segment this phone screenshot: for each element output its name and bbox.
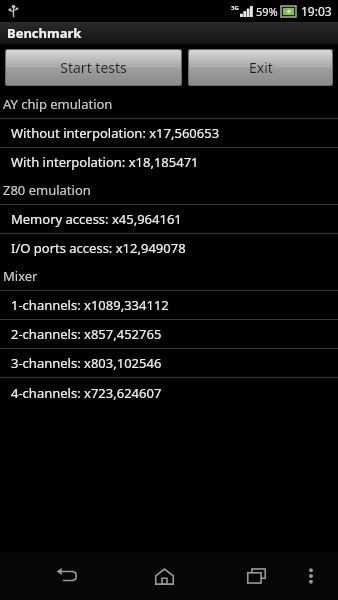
button[interactable]: 1-channels: x1089,334112 (0, 291, 338, 319)
button[interactable]: Recent apps (232, 552, 280, 600)
button[interactable]: 2-channels: x857,452765 (0, 320, 338, 348)
button[interactable]: Exit (189, 50, 332, 85)
staticText: AY chip emulation (3, 95, 113, 113)
staticText: I/O ports access: x12,949078 (11, 239, 186, 257)
staticText: 4-channels: x723,624607 (11, 384, 162, 402)
button[interactable]: Without interpolation: x17,560653 (0, 119, 338, 147)
staticText: 59% (256, 4, 278, 19)
button[interactable]: I/O ports access: x12,949078 (0, 234, 338, 262)
button[interactable]: Start tests (6, 50, 181, 85)
staticText: Exit (249, 58, 273, 77)
button[interactable]: 3-channels: x803,102546 (0, 349, 338, 377)
button[interactable]: More options (292, 557, 330, 595)
staticText: Mixer (3, 267, 38, 285)
button[interactable]: With interpolation: x18,185471 (0, 148, 338, 176)
staticText: Z80 emulation (3, 181, 91, 199)
staticText: 3G (231, 4, 239, 12)
staticText: 2-channels: x857,452765 (11, 325, 162, 343)
staticText: Without interpolation: x17,560653 (11, 124, 220, 142)
staticText: Start tests (60, 58, 127, 77)
button[interactable]: Back (43, 552, 91, 600)
staticText: Memory access: x45,964161 (11, 210, 182, 228)
button[interactable]: 4-channels: x723,624607 (0, 378, 338, 407)
staticText: Benchmark (7, 24, 82, 42)
button[interactable]: Memory access: x45,964161 (0, 205, 338, 233)
staticText: With interpolation: x18,185471 (11, 153, 199, 171)
staticText: 19:03 (301, 3, 332, 19)
staticText: 3-channels: x803,102546 (11, 354, 162, 372)
staticText: 1-channels: x1089,334112 (11, 296, 169, 314)
button[interactable]: Home (140, 552, 188, 600)
